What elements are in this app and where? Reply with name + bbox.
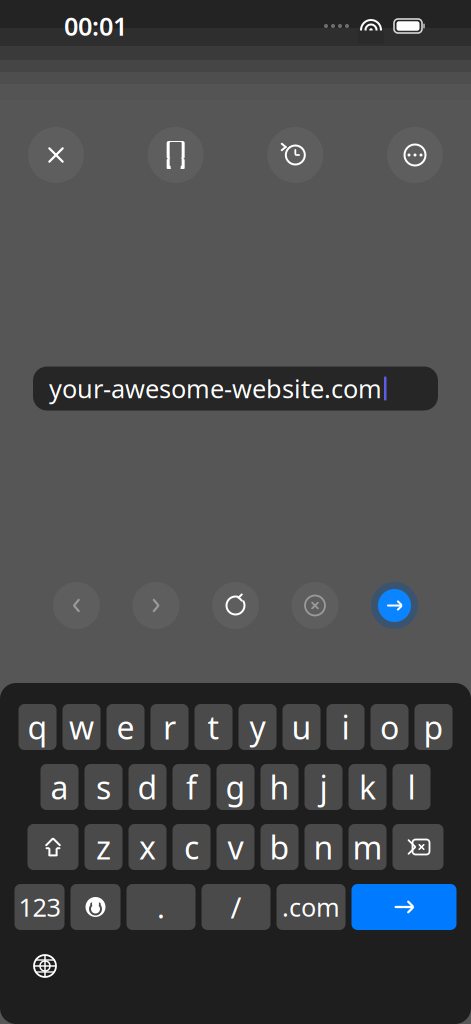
staticText: g — [225, 766, 245, 808]
staticText: l — [407, 766, 415, 808]
button[interactable]: e — [106, 704, 144, 750]
button[interactable]: your-awesome-website.com — [33, 366, 438, 410]
button[interactable]: z — [84, 824, 122, 870]
button[interactable]: k — [348, 764, 386, 810]
button[interactable]: Stop — [291, 582, 338, 629]
staticText: w — [69, 706, 94, 748]
button[interactable]: . — [126, 884, 195, 930]
button[interactable]: g — [216, 764, 254, 810]
staticText: b — [269, 826, 289, 868]
button[interactable]: d — [128, 764, 166, 810]
button[interactable]: j — [304, 764, 342, 810]
button[interactable]: Shift — [27, 824, 78, 870]
staticText: j — [319, 766, 327, 808]
button[interactable]: w — [62, 704, 100, 750]
staticText: f — [186, 766, 197, 808]
button[interactable]: t — [194, 704, 232, 750]
button[interactable]: s — [84, 764, 122, 810]
button[interactable]: u — [282, 704, 320, 750]
staticText: v — [227, 826, 243, 868]
button[interactable]: Bookmarks — [148, 127, 204, 183]
staticText: y — [249, 706, 265, 748]
staticText: x — [139, 826, 156, 868]
button[interactable]: a — [40, 764, 78, 810]
staticText: n — [313, 826, 333, 868]
staticText: c — [184, 826, 199, 868]
staticText: 00:01 — [64, 9, 127, 43]
button[interactable]: Switch keyboard — [23, 944, 67, 988]
staticText: m — [352, 826, 382, 868]
staticText: .com — [282, 890, 340, 924]
staticText: s — [96, 766, 111, 808]
staticText: o — [380, 706, 399, 748]
staticText: d — [137, 766, 157, 808]
button[interactable]: Emoji — [70, 884, 120, 930]
button[interactable]: c — [172, 824, 210, 870]
staticText: 123 — [18, 890, 60, 924]
staticText: u — [291, 706, 311, 748]
staticText: . — [157, 887, 165, 926]
button[interactable]: Close — [28, 127, 84, 183]
staticText: t — [207, 706, 219, 748]
button[interactable]: o — [370, 704, 408, 750]
staticText: i — [341, 706, 349, 748]
button[interactable]: p — [414, 704, 452, 750]
button[interactable]: b — [260, 824, 298, 870]
button[interactable]: .com — [276, 884, 345, 930]
button[interactable]: r — [150, 704, 188, 750]
staticText: z — [96, 826, 111, 868]
staticText: a — [50, 766, 68, 808]
button[interactable]: History — [267, 127, 323, 183]
button[interactable]: Go — [351, 884, 456, 930]
button[interactable]: Delete — [392, 824, 443, 870]
button[interactable]: l — [392, 764, 430, 810]
button[interactable]: Go — [371, 582, 418, 629]
button[interactable]: y — [238, 704, 276, 750]
button[interactable]: v — [216, 824, 254, 870]
staticText: p — [423, 706, 443, 748]
staticText: h — [269, 766, 289, 808]
button[interactable]: / — [201, 884, 270, 930]
button[interactable]: More — [387, 127, 443, 183]
staticText: r — [163, 706, 176, 748]
button[interactable]: 123 — [14, 884, 64, 930]
staticText: q — [27, 706, 47, 748]
button[interactable]: m — [348, 824, 386, 870]
button[interactable]: Forward — [132, 582, 179, 629]
button[interactable]: x — [128, 824, 166, 870]
staticText: e — [116, 706, 134, 748]
staticText: your-awesome-website.com — [49, 372, 382, 405]
button[interactable]: q — [18, 704, 56, 750]
button[interactable]: Back — [53, 582, 100, 629]
button[interactable]: h — [260, 764, 298, 810]
button[interactable]: Reload — [212, 582, 259, 629]
button[interactable]: n — [304, 824, 342, 870]
staticText: / — [230, 887, 241, 926]
staticText: k — [359, 766, 376, 808]
button[interactable]: f — [172, 764, 210, 810]
button[interactable]: i — [326, 704, 364, 750]
